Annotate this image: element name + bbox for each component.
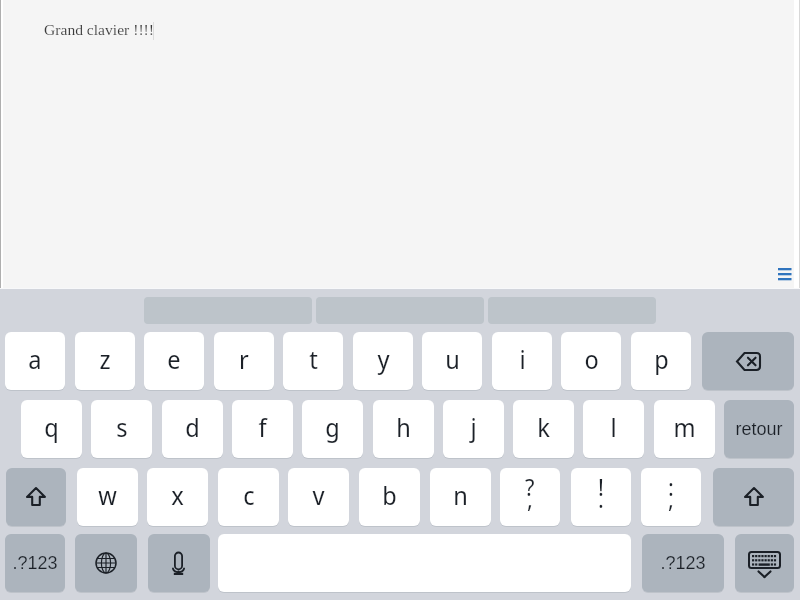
staticText: y (377, 342, 390, 376)
button[interactable]: .?123 (5, 534, 65, 592)
button[interactable]: s (91, 400, 152, 458)
button[interactable]: q (21, 400, 82, 458)
staticText: f (258, 410, 267, 444)
button[interactable]: i (492, 332, 552, 390)
button[interactable]: l (583, 400, 644, 458)
button[interactable]: : (641, 468, 701, 526)
button[interactable]: w (77, 468, 138, 526)
button[interactable]: r (214, 332, 274, 390)
button[interactable]: z (75, 332, 135, 390)
button[interactable]: x (147, 468, 208, 526)
staticText: h (396, 410, 411, 444)
button[interactable]: c (218, 468, 279, 526)
staticText: l (610, 410, 617, 444)
button[interactable]: u (422, 332, 482, 390)
staticText: z (99, 342, 111, 376)
staticText: n (453, 478, 468, 512)
staticText: ! (598, 471, 604, 502)
staticText: .?123 (12, 553, 58, 573)
staticText: i (519, 342, 526, 376)
staticText: a (28, 342, 42, 376)
button[interactable]: ! (571, 468, 631, 526)
button[interactable]: Hide keyboard (735, 534, 794, 592)
button[interactable]: retour (724, 400, 794, 458)
button[interactable]: Menu (774, 262, 796, 284)
button[interactable]: t (283, 332, 343, 390)
staticText: : (668, 471, 674, 502)
staticText: x (171, 478, 184, 512)
staticText: v (312, 478, 325, 512)
staticText: m (673, 410, 696, 444)
staticText: w (98, 478, 117, 512)
button[interactable]: h (373, 400, 434, 458)
button[interactable]: ? (500, 468, 560, 526)
staticText: . (598, 483, 604, 514)
staticText: b (382, 478, 397, 512)
staticText: k (537, 410, 550, 444)
button[interactable]: d (162, 400, 223, 458)
button[interactable]: k (513, 400, 574, 458)
button[interactable]: o (561, 332, 621, 390)
staticText: p (654, 342, 669, 376)
staticText: o (584, 342, 599, 376)
button[interactable]: Shift (6, 468, 66, 526)
button[interactable]: g (302, 400, 363, 458)
button[interactable]: v (288, 468, 349, 526)
staticText: Grand clavier !!!! (44, 21, 154, 38)
button[interactable]: n (430, 468, 491, 526)
staticText: r (239, 342, 249, 376)
staticText: j (470, 410, 477, 444)
button[interactable]: Change language (75, 534, 137, 592)
staticText: .?123 (660, 553, 706, 573)
staticText: , (668, 483, 674, 514)
staticText: , (527, 483, 533, 514)
staticText: ? (525, 471, 535, 502)
staticText: g (325, 410, 340, 444)
staticText: t (309, 342, 318, 376)
button[interactable]: e (144, 332, 204, 390)
staticText: q (44, 410, 59, 444)
button[interactable]: j (443, 400, 504, 458)
button[interactable]: Shift (713, 468, 794, 526)
button[interactable]: .?123 (642, 534, 724, 592)
staticText: s (116, 410, 128, 444)
button[interactable]: m (654, 400, 715, 458)
button[interactable]: a (5, 332, 65, 390)
button[interactable]: Backspace (702, 332, 794, 390)
button[interactable]: Dictation (148, 534, 210, 592)
staticText: u (445, 342, 460, 376)
staticText: d (185, 410, 200, 444)
staticText: retour (735, 419, 783, 439)
staticText: c (243, 478, 255, 512)
staticText: e (167, 342, 181, 376)
button[interactable]: b (359, 468, 420, 526)
button[interactable]: p (631, 332, 691, 390)
button[interactable]: f (232, 400, 293, 458)
button[interactable]: y (353, 332, 413, 390)
